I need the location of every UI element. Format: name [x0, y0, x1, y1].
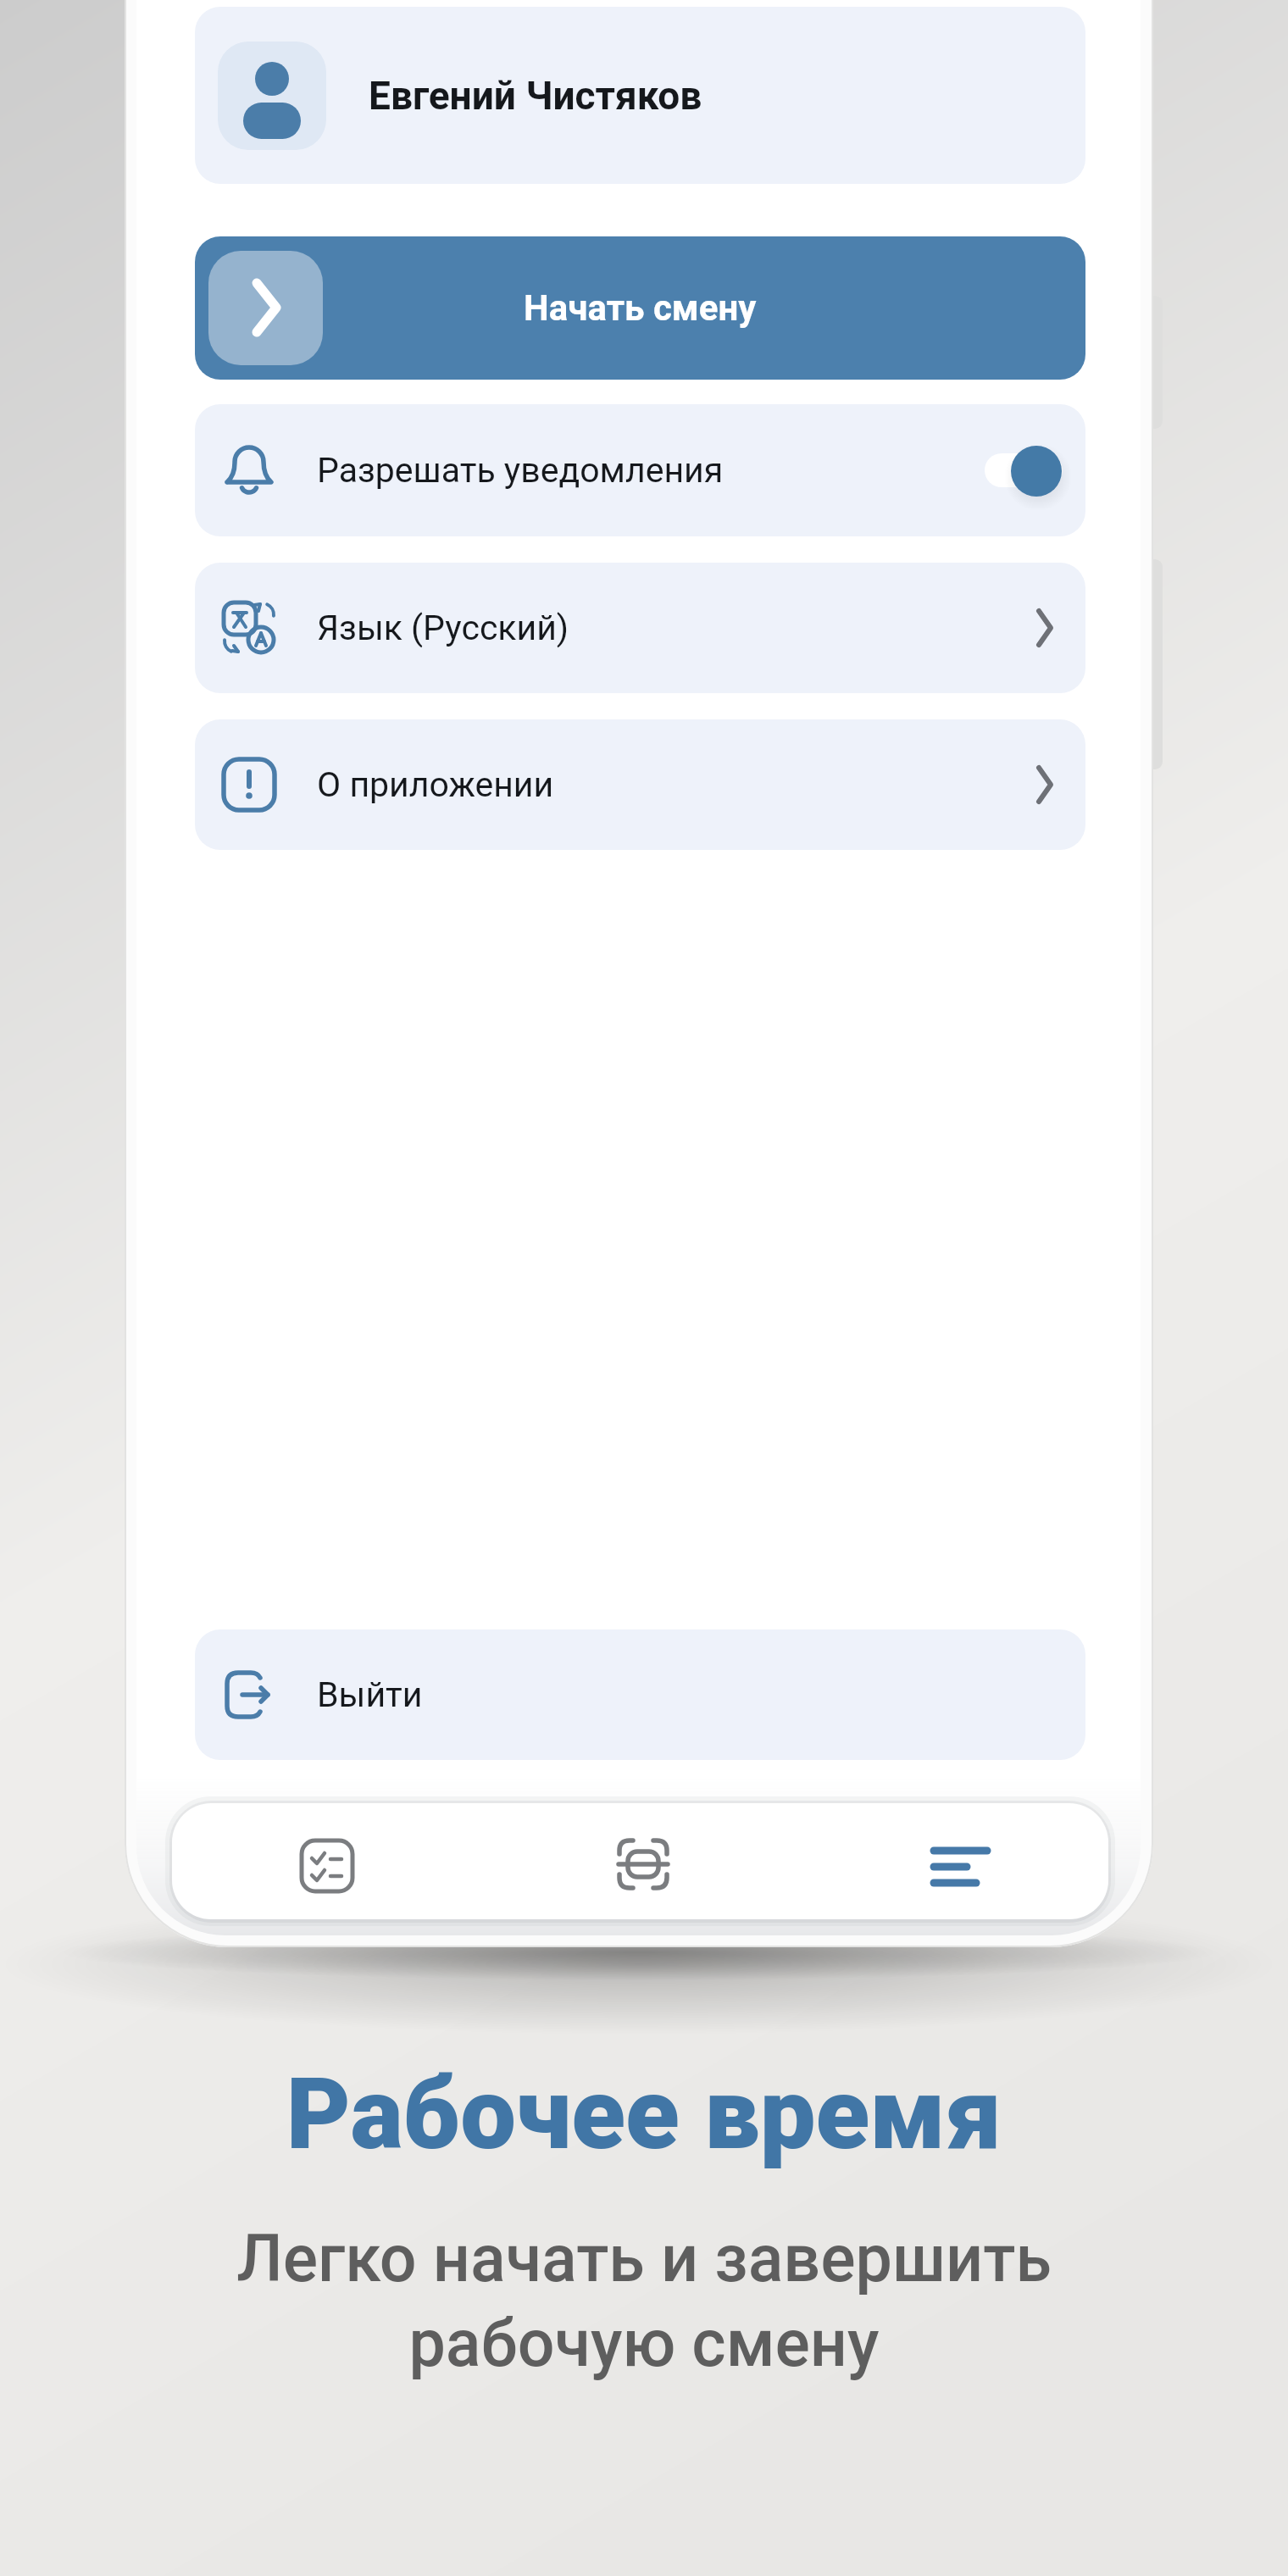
button[interactable]	[300, 1839, 354, 1893]
staticText: Легко начать и завершить	[0, 2221, 1288, 2297]
staticText: О приложении	[317, 764, 554, 805]
button[interactable]	[985, 443, 1063, 497]
staticText: Рабочее время	[0, 2056, 1288, 2172]
staticText: Евгений Чистяков	[369, 73, 702, 119]
staticText: Разрешать уведомления	[317, 450, 724, 491]
staticText: рабочую смену	[0, 2306, 1288, 2382]
button[interactable]	[934, 1839, 988, 1893]
staticText: Выйти	[317, 1674, 423, 1715]
button[interactable]	[616, 1837, 670, 1891]
button[interactable]: О приложении	[195, 719, 1085, 850]
button[interactable]: Начать смену	[195, 236, 1085, 380]
staticText: Начать смену	[524, 287, 757, 329]
staticText: Язык (Русский)	[317, 608, 569, 648]
button[interactable]: Выйти	[195, 1629, 1085, 1760]
button[interactable]: Язык (Русский)	[195, 563, 1085, 693]
button[interactable]: Разрешать уведомления	[195, 404, 1085, 536]
button[interactable]: Евгений Чистяков	[195, 7, 1085, 184]
